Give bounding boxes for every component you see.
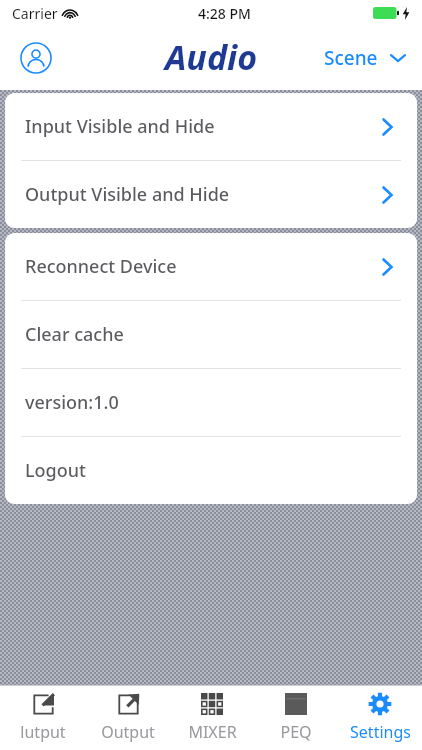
staticText: version:1.0 [25, 390, 119, 415]
button[interactable]: Clear cache [5, 301, 417, 368]
staticText: Settings [350, 721, 411, 743]
button[interactable]: Reconnect Device [5, 233, 417, 300]
staticText: Output Visible and Hide [25, 182, 230, 207]
button[interactable]: Scene [320, 37, 410, 79]
button[interactable]: Settings [338, 686, 422, 748]
button[interactable]: lutput [0, 686, 85, 748]
staticText: Input Visible and Hide [25, 114, 215, 139]
staticText: 4:28 PM [198, 4, 251, 23]
staticText: MIXER [188, 721, 237, 743]
button[interactable]: Logout [5, 437, 417, 504]
staticText: Logout [25, 458, 86, 483]
staticText: Output [101, 721, 155, 743]
button[interactable]: Profile [14, 36, 58, 80]
staticText: lutput [20, 721, 66, 743]
staticText: Reconnect Device [25, 254, 177, 279]
button[interactable]: Input Visible and Hide [5, 93, 417, 160]
button[interactable]: MIXER [170, 686, 254, 748]
staticText: Clear cache [25, 322, 124, 347]
staticText: Carrier [12, 4, 58, 23]
button[interactable]: Output Visible and Hide [5, 161, 417, 228]
button[interactable]: version:1.0 [5, 369, 417, 436]
button[interactable]: PEQ [254, 686, 338, 748]
button[interactable]: Output [85, 686, 170, 748]
staticText: Audio [165, 34, 258, 80]
staticText: Scene [324, 45, 378, 71]
staticText: PEQ [280, 721, 312, 743]
